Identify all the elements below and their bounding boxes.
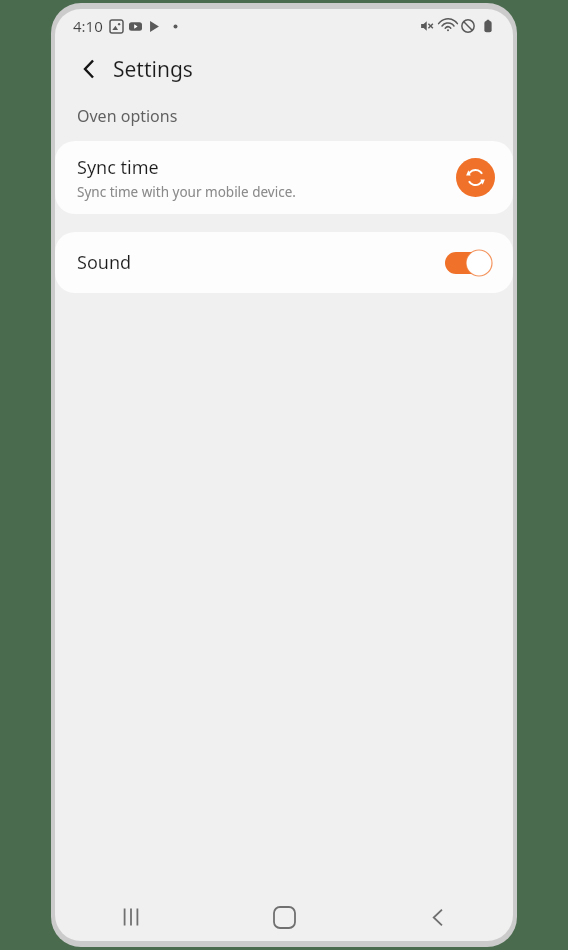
button[interactable]: Recent apps	[103, 893, 159, 941]
button[interactable]: Sound	[55, 232, 513, 293]
staticText: Sync time with your mobile device.	[77, 183, 296, 201]
button[interactable]: Sound toggle, on	[445, 249, 493, 277]
staticText: Settings	[113, 55, 193, 84]
button[interactable]: Back	[69, 49, 109, 89]
staticText: Oven options	[77, 105, 178, 127]
button[interactable]: Sync now	[456, 158, 495, 197]
button[interactable]: Back	[409, 893, 465, 941]
staticText: 4:10	[73, 16, 103, 36]
staticText: Sound	[77, 250, 445, 275]
staticText: Sync time	[77, 155, 159, 180]
button[interactable]: Sync time	[55, 141, 513, 214]
button[interactable]: Home	[256, 893, 312, 941]
